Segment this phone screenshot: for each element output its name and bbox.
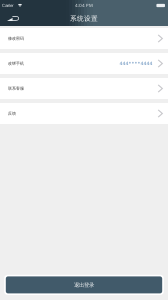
button[interactable]: 修改密码 <box>0 28 168 49</box>
button[interactable]: Back <box>0 13 23 24</box>
button[interactable]: 退出登录 <box>4 275 164 295</box>
staticText: 反馈 <box>8 111 16 116</box>
staticText: 联系客服 <box>8 86 24 91</box>
button[interactable]: 联系客服 <box>0 78 168 99</box>
button[interactable]: 改绑手机 <box>0 53 168 74</box>
staticText: 退出登录 <box>74 281 94 288</box>
button[interactable]: 反馈 <box>0 103 168 124</box>
staticText: 444****4444 <box>119 60 152 66</box>
staticText: 系统设置 <box>70 14 98 23</box>
staticText: 修改密码 <box>8 36 24 41</box>
staticText: 4:04 PM <box>75 3 93 8</box>
staticText: 改绑手机 <box>8 61 24 66</box>
staticText: Carrier <box>2 3 13 8</box>
